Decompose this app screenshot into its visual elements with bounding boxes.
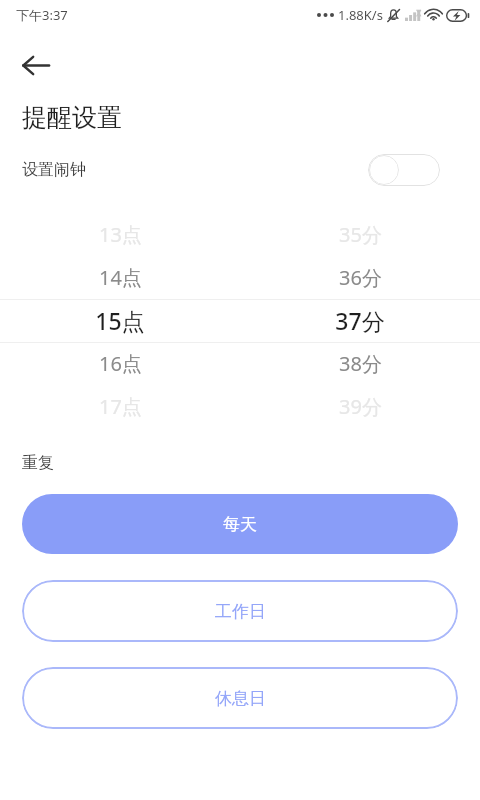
staticText: 16点	[99, 350, 142, 377]
button[interactable]: 14点	[0, 256, 240, 299]
button[interactable]: 13点	[0, 213, 240, 256]
other: Toggle alarm	[368, 154, 440, 186]
button[interactable]: 每天	[22, 494, 458, 554]
button[interactable]: 16点	[0, 342, 240, 385]
staticText: 13点	[99, 221, 142, 248]
staticText: 39分	[339, 393, 382, 420]
staticText: 14点	[99, 264, 142, 291]
staticText: 设置闹钟	[22, 160, 86, 180]
button[interactable]: 休息日	[22, 667, 458, 729]
staticText: 下午3:37	[16, 6, 68, 24]
staticText: 每天	[223, 514, 257, 535]
button[interactable]: 38分	[240, 342, 480, 385]
staticText: 工作日	[215, 601, 266, 622]
staticText: 36分	[339, 264, 382, 291]
button[interactable]: 35分	[240, 213, 480, 256]
staticText: 重复	[22, 453, 54, 473]
button[interactable]: Back	[11, 41, 59, 89]
staticText: 1.88K/s	[338, 6, 383, 24]
staticText: 17点	[99, 393, 142, 420]
button[interactable]: 36分	[240, 256, 480, 299]
button[interactable]: 37分	[240, 299, 480, 342]
staticText: 15点	[95, 305, 145, 336]
staticText: 休息日	[215, 688, 266, 709]
button[interactable]: 39分	[240, 385, 480, 428]
button[interactable]: 工作日	[22, 580, 458, 642]
button[interactable]: 15点	[0, 299, 240, 342]
staticText: 37分	[335, 305, 385, 336]
staticText: 提醒设置	[22, 102, 122, 133]
staticText: 35分	[339, 221, 382, 248]
staticText: 38分	[339, 350, 382, 377]
button[interactable]: 设置闹钟	[0, 150, 480, 190]
